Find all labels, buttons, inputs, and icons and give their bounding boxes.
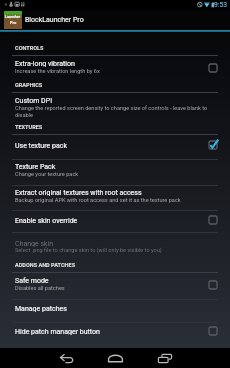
button[interactable]: Custom DPI xyxy=(0,93,230,120)
button[interactable]: Recent apps xyxy=(140,348,189,368)
staticText: Disables all patches xyxy=(15,285,65,292)
button[interactable]: Home xyxy=(91,348,140,368)
staticText: CONTROLS xyxy=(15,45,44,52)
button[interactable]: Safe mode xyxy=(0,273,230,299)
button[interactable]: Hide patch manager button xyxy=(0,323,230,343)
button[interactable]: Extra-long vibration xyxy=(0,56,230,76)
staticText: Launcher xyxy=(5,15,21,19)
staticText: 9:53 xyxy=(214,1,228,9)
staticText: Increase the vibration length by 6x xyxy=(15,68,100,75)
button[interactable]: Enable skin override xyxy=(0,211,230,232)
staticText: Manage patches xyxy=(15,305,67,312)
staticText: Extra-long vibration xyxy=(15,60,75,67)
staticText: BlockLauncher Pro xyxy=(25,16,84,24)
button[interactable]: Manage patches xyxy=(0,300,230,322)
staticText: Use texture pack xyxy=(15,142,67,149)
staticText: Extract original textures with root acce… xyxy=(15,189,142,196)
staticText: ADDONS AND PATCHES xyxy=(15,262,76,269)
staticText: Change the reported screen density to ch… xyxy=(15,105,219,119)
staticText: Safe mode xyxy=(15,277,49,284)
staticText: Change skin xyxy=(15,240,54,247)
staticText: Pro xyxy=(10,20,17,25)
staticText: Enable skin override xyxy=(15,217,78,224)
button[interactable]: Extract original textures with root acce… xyxy=(0,186,230,210)
button[interactable]: Use texture pack xyxy=(0,135,230,159)
button[interactable]: Change skin xyxy=(0,233,230,255)
staticText: TEXTURES xyxy=(15,124,43,131)
staticText: Change your texture pack xyxy=(15,171,79,178)
staticText: Hide patch manager button xyxy=(15,328,100,335)
button[interactable]: Back xyxy=(42,348,91,368)
staticText: Custom DPI xyxy=(15,97,53,104)
staticText: Texture Pack xyxy=(15,163,56,170)
button[interactable]: Texture Pack xyxy=(0,160,230,185)
staticText: Select .png file to change skin to (will… xyxy=(15,247,162,254)
staticText: Backup original APK with root access and… xyxy=(15,197,181,204)
staticText: GRAPHICS xyxy=(15,82,43,89)
